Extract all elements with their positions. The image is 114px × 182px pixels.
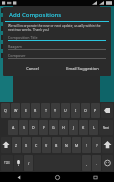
button[interactable]: G bbox=[49, 120, 58, 135]
button[interactable]: N bbox=[62, 137, 71, 153]
staticText: Y bbox=[54, 108, 57, 113]
staticText: , bbox=[86, 161, 87, 166]
button[interactable]: Cancel bbox=[7, 64, 57, 73]
button[interactable]: . bbox=[92, 155, 101, 171]
staticText: Composer bbox=[8, 53, 26, 58]
staticText: Cancel bbox=[26, 66, 39, 71]
button[interactable]: A bbox=[8, 120, 18, 135]
staticText: B bbox=[55, 143, 58, 148]
staticText: I bbox=[75, 108, 77, 113]
staticText: / bbox=[28, 161, 30, 166]
button[interactable]: H bbox=[59, 120, 68, 135]
staticText: J bbox=[73, 125, 74, 130]
staticText: Add Compositions bbox=[9, 11, 62, 19]
staticText: X bbox=[25, 143, 28, 148]
button[interactable]: V bbox=[42, 137, 51, 153]
button[interactable]: E bbox=[21, 103, 30, 118]
staticText: U bbox=[64, 108, 67, 113]
staticText: Raagam bbox=[8, 44, 22, 49]
button[interactable]: D bbox=[29, 120, 38, 135]
button[interactable]: Z bbox=[12, 137, 21, 153]
button[interactable]: / bbox=[24, 155, 33, 171]
button[interactable]: R bbox=[31, 103, 40, 118]
button[interactable]: Home bbox=[38, 172, 76, 182]
button[interactable]: M bbox=[72, 137, 81, 153]
button[interactable]: , bbox=[82, 155, 91, 171]
button[interactable]: Voice input bbox=[14, 155, 23, 171]
button[interactable]: P bbox=[91, 103, 100, 118]
button[interactable]: Y bbox=[51, 103, 60, 118]
button[interactable]: S bbox=[19, 120, 28, 135]
staticText: O bbox=[84, 108, 87, 113]
staticText: D bbox=[32, 125, 35, 130]
staticText: G bbox=[52, 125, 55, 130]
button[interactable]: Emoji bbox=[102, 155, 113, 171]
staticText: . bbox=[96, 161, 97, 166]
button[interactable]: Composition Title bbox=[8, 34, 106, 43]
staticText: Composition Title bbox=[8, 35, 38, 40]
button[interactable]: U bbox=[61, 103, 70, 118]
button[interactable]: ? bbox=[92, 137, 101, 153]
button[interactable]: ?123 bbox=[1, 155, 13, 171]
button[interactable]: X bbox=[22, 137, 31, 153]
staticText: Q bbox=[4, 108, 7, 113]
staticText: E bbox=[25, 108, 27, 113]
staticText: A bbox=[12, 125, 15, 130]
staticText: M bbox=[75, 143, 79, 148]
button[interactable]: C bbox=[32, 137, 41, 153]
staticText: Next bbox=[103, 126, 109, 130]
staticText: R bbox=[34, 108, 37, 113]
button[interactable]: Next bbox=[99, 120, 113, 135]
staticText: V bbox=[45, 143, 48, 148]
button[interactable]: Backspace bbox=[101, 103, 113, 118]
button[interactable]: Composer bbox=[8, 52, 106, 61]
button[interactable]: Shift bbox=[102, 137, 113, 153]
button[interactable]: L bbox=[89, 120, 98, 135]
button[interactable]: O bbox=[81, 103, 90, 118]
staticText: ?123 bbox=[4, 161, 10, 165]
button[interactable]: Raagam bbox=[8, 43, 106, 52]
button[interactable]: Q bbox=[1, 103, 10, 118]
staticText: L bbox=[93, 125, 95, 130]
staticText: F bbox=[43, 125, 45, 130]
button[interactable]: J bbox=[69, 120, 78, 135]
staticText: ! bbox=[86, 143, 87, 148]
staticText: K bbox=[82, 125, 85, 130]
staticText: We will incorporate the new or next upda… bbox=[8, 24, 106, 32]
button[interactable]: Back bbox=[0, 172, 38, 182]
staticText: H bbox=[62, 125, 65, 130]
button[interactable]: W bbox=[11, 103, 20, 118]
staticText: W bbox=[14, 108, 18, 113]
staticText: Email Suggestion bbox=[66, 66, 99, 71]
staticText: Z bbox=[15, 143, 18, 148]
staticText: C bbox=[35, 143, 38, 148]
button[interactable]: Recent apps bbox=[76, 172, 114, 182]
staticText: P bbox=[94, 108, 97, 113]
button[interactable]: ! bbox=[82, 137, 91, 153]
button[interactable]: K bbox=[79, 120, 88, 135]
button[interactable]: T bbox=[41, 103, 50, 118]
button[interactable]: Email Suggestion bbox=[57, 64, 107, 73]
button[interactable]: Shift bbox=[1, 137, 11, 153]
button[interactable]: F bbox=[39, 120, 48, 135]
staticText: S bbox=[23, 125, 25, 130]
button[interactable]: I bbox=[71, 103, 80, 118]
button[interactable]: B bbox=[52, 137, 61, 153]
staticText: T bbox=[45, 108, 47, 113]
staticText: N bbox=[65, 143, 68, 148]
staticText: ? bbox=[96, 143, 98, 148]
